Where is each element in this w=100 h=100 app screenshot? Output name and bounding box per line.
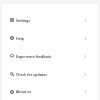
button[interactable]: Experience feedback [2, 47, 98, 65]
button[interactable]: About us [2, 83, 98, 100]
staticText: Experience feedback [16, 54, 83, 59]
staticText: About us [16, 89, 83, 94]
staticText: Settings [16, 18, 83, 23]
button[interactable]: Help [2, 29, 98, 47]
staticText: Check for updates [16, 72, 83, 77]
staticText: Help [16, 36, 83, 41]
button[interactable]: Check for updates [2, 65, 98, 83]
button[interactable]: Settings [2, 11, 98, 29]
